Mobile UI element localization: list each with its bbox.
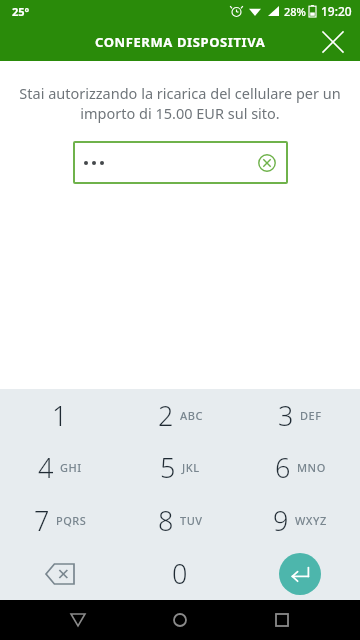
button[interactable]: 4	[0, 441, 120, 494]
staticText: 9	[273, 502, 289, 539]
staticText: 6	[275, 449, 291, 486]
button[interactable]: Chiudi	[314, 23, 352, 61]
staticText: 8	[158, 502, 174, 539]
staticText: Stai autorizzando la ricarica del cellul…	[14, 83, 346, 124]
button[interactable]: Recenti	[258, 600, 306, 640]
button[interactable]: 0	[120, 547, 240, 600]
staticText: 5	[160, 449, 176, 486]
button[interactable]: 8	[120, 494, 240, 547]
staticText: ABC	[180, 408, 203, 423]
staticText: 3	[278, 397, 294, 434]
button[interactable]: Home	[156, 600, 204, 640]
button[interactable]: 9	[240, 494, 360, 547]
button[interactable]: 6	[240, 441, 360, 494]
staticText: TUV	[180, 513, 203, 528]
staticText: MNO	[297, 460, 326, 475]
button[interactable]: 1	[0, 389, 120, 441]
button[interactable]: 2	[120, 389, 240, 441]
button[interactable]: Cancella	[73, 141, 288, 184]
staticText: 4	[38, 449, 54, 486]
staticText: 7	[34, 502, 50, 539]
staticText: DEF	[300, 408, 322, 423]
staticText: WXYZ	[295, 513, 327, 528]
staticText: 0	[172, 555, 188, 592]
staticText: 19:20	[321, 3, 352, 19]
staticText: JKL	[182, 460, 200, 475]
staticText: GHI	[60, 460, 82, 475]
staticText: 28%	[284, 4, 306, 19]
button[interactable]: Indietro	[54, 600, 102, 640]
button[interactable]: Invio	[240, 547, 360, 600]
button[interactable]: 5	[120, 441, 240, 494]
button[interactable]: Backspace	[0, 547, 120, 600]
button[interactable]: 3	[240, 389, 360, 441]
staticText: 25°	[12, 4, 30, 19]
staticText: CONFERMA DISPOSITIVA	[95, 33, 266, 51]
staticText: PQRS	[56, 513, 87, 528]
button[interactable]: 7	[0, 494, 120, 547]
staticText: 1	[52, 397, 68, 434]
staticText: 2	[158, 397, 174, 434]
button[interactable]: Cancella	[255, 151, 279, 175]
